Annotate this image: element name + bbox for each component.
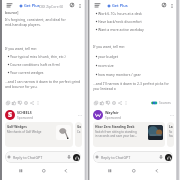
button[interactable]: More options bbox=[76, 2, 83, 9]
button[interactable]: Voice mode bbox=[165, 154, 172, 161]
staticText: Switch from sitting to standing in secon… bbox=[95, 130, 137, 138]
button[interactable]: Home bbox=[39, 166, 48, 175]
staticText: Lat bbox=[169, 125, 174, 129]
button[interactable]: Menu bbox=[5, 1, 13, 9]
button[interactable]: S bbox=[5, 110, 82, 120]
staticText: S bbox=[8, 110, 13, 120]
staticText: SCHEELS bbox=[17, 110, 32, 115]
staticText: Have back/neck discomfort bbox=[98, 19, 142, 24]
staticText: Your typical miss (chunk, thin, etc.) bbox=[10, 54, 66, 59]
staticText: Reply to ChatGPT bbox=[101, 155, 131, 160]
button[interactable]: Next ad bbox=[167, 122, 174, 147]
button[interactable]: Good response bbox=[99, 100, 105, 106]
staticText: ...and I'll narrow it down to 2-3 perfec… bbox=[93, 81, 169, 91]
button[interactable]: Get Plus bbox=[106, 2, 129, 9]
staticText: Go bbox=[77, 125, 82, 129]
button[interactable]: Hbor Zero Standing Desk bbox=[93, 122, 165, 147]
staticText: room size bbox=[98, 63, 114, 68]
staticText: Sponsored bbox=[105, 116, 122, 120]
staticText: your budget bbox=[98, 54, 118, 59]
button[interactable]: Home bbox=[129, 166, 138, 175]
staticText: If you want, tell me: bbox=[93, 44, 125, 49]
button[interactable]: Copy bbox=[5, 100, 11, 106]
staticText: bounce] bbox=[5, 10, 19, 15]
staticText: Golf Wedges bbox=[7, 125, 27, 129]
staticText: So fas bbox=[169, 130, 174, 138]
button[interactable]: Get Plus bbox=[18, 2, 41, 9]
staticText: Ca bbox=[77, 130, 81, 134]
staticText: Get Plus bbox=[24, 3, 40, 8]
staticText: Work 6-10+ hours at a desk bbox=[98, 11, 142, 16]
button[interactable]: Golf Wedges bbox=[5, 122, 73, 147]
staticText: ...and I can narrow it down to the perfe… bbox=[5, 79, 81, 89]
button[interactable]: Share bbox=[29, 100, 35, 106]
button[interactable]: More bbox=[123, 100, 129, 106]
button[interactable]: Back bbox=[61, 166, 70, 175]
staticText: Wayfair bbox=[105, 110, 119, 115]
button[interactable]: Reply to ChatGPT bbox=[5, 151, 81, 163]
staticText: how many monitors / gear bbox=[98, 72, 141, 77]
staticText: Sponsored bbox=[17, 116, 34, 120]
button[interactable]: Recents bbox=[105, 166, 114, 175]
button[interactable]: Copy bbox=[93, 100, 99, 106]
button[interactable]: Menu bbox=[93, 1, 101, 9]
button[interactable]: New chat bbox=[160, 1, 168, 9]
button[interactable]: More bbox=[35, 100, 41, 106]
staticText: Reply to ChatGPT bbox=[13, 155, 43, 160]
button[interactable]: Reply to ChatGPT bbox=[93, 151, 173, 163]
button[interactable]: Bad response bbox=[105, 100, 111, 106]
staticText: Hbor Zero Standing Desk bbox=[95, 125, 135, 129]
button[interactable]: Back bbox=[152, 166, 161, 175]
button[interactable]: Voice mode bbox=[73, 154, 80, 161]
staticText: If you want, tell me: bbox=[5, 46, 37, 51]
button[interactable]: New chat bbox=[68, 1, 76, 9]
button[interactable]: Wayfair bbox=[93, 110, 174, 120]
button[interactable]: Next ad bbox=[75, 122, 82, 147]
staticText: Course conditions (soft vs firm) bbox=[10, 62, 61, 67]
button[interactable]: Good response bbox=[11, 100, 17, 106]
staticText: Want a more active workday bbox=[98, 27, 144, 32]
button[interactable]: Read aloud bbox=[111, 100, 117, 106]
button[interactable]: Share bbox=[117, 100, 123, 106]
staticText: Merchants of Golf Wedge bbox=[7, 130, 42, 134]
staticText: Get Plus bbox=[112, 3, 128, 8]
button[interactable]: More options bbox=[168, 2, 175, 9]
staticText: Sources bbox=[159, 101, 171, 105]
button[interactable]: Sources bbox=[151, 101, 174, 105]
button[interactable]: Recents bbox=[16, 166, 25, 175]
staticText: Your current wedges bbox=[10, 70, 44, 75]
button[interactable]: Bad response bbox=[17, 100, 23, 106]
staticText: CBX ZipCore 60 bbox=[39, 4, 64, 9]
staticText: It's forgiving, consistent, and ideal fo… bbox=[5, 17, 66, 27]
button[interactable]: Read aloud bbox=[23, 100, 29, 106]
